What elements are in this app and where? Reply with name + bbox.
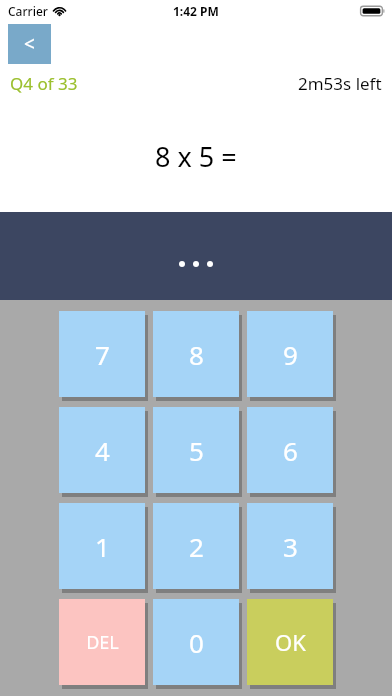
button[interactable]: 7 [59, 311, 145, 397]
staticText: 5 [189, 433, 204, 468]
staticText: Carrier [8, 3, 48, 19]
staticText: 0 [189, 625, 204, 660]
staticText: 3 [283, 529, 298, 564]
staticText: 6 [283, 433, 298, 468]
staticText: OK [275, 627, 306, 657]
button[interactable]: 5 [153, 407, 239, 493]
staticText: 2 [189, 529, 204, 564]
button[interactable]: 6 [247, 407, 333, 493]
button[interactable]: 1 [59, 503, 145, 589]
staticText: 8 x 5 = [155, 138, 237, 175]
staticText: 4 [95, 433, 110, 468]
button[interactable]: 3 [247, 503, 333, 589]
staticText: 8 [189, 337, 204, 372]
button[interactable]: Back [8, 24, 51, 64]
staticText: 9 [283, 337, 298, 372]
staticText: Q4 of 33 [10, 72, 78, 95]
button[interactable]: DEL [59, 599, 145, 685]
staticText: DEL [86, 630, 119, 655]
staticText: 1:42 PM [173, 3, 219, 19]
button[interactable]: 9 [247, 311, 333, 397]
button[interactable]: 2 [153, 503, 239, 589]
staticText: 7 [95, 337, 110, 372]
button[interactable]: 4 [59, 407, 145, 493]
staticText: 1 [95, 529, 110, 564]
staticText: 2m53s left [298, 72, 382, 95]
button[interactable]: 0 [153, 599, 239, 685]
button[interactable]: OK [247, 599, 333, 685]
button[interactable]: 8 [153, 311, 239, 397]
staticText: < [24, 31, 35, 57]
